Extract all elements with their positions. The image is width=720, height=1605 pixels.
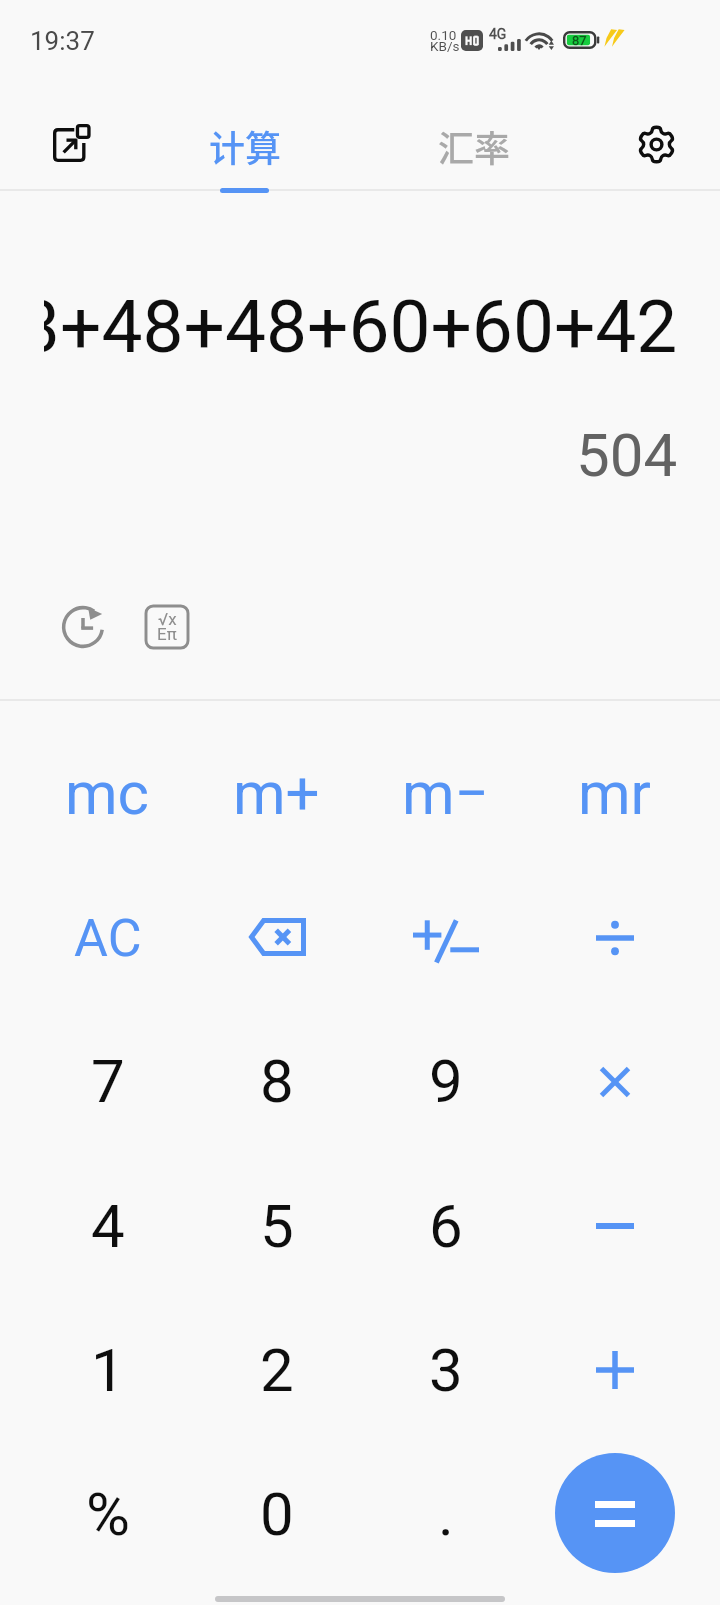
staticText: 3+48+48+60+60+42	[19, 284, 678, 370]
staticText: 0.10	[430, 27, 457, 43]
staticText: KB/s	[430, 38, 460, 54]
staticText: 19:37	[30, 26, 95, 56]
staticText: 4G	[489, 26, 507, 42]
button[interactable]: Multiply	[530, 1010, 699, 1154]
button[interactable]: Settings	[627, 115, 685, 173]
button[interactable]: 0	[192, 1442, 361, 1586]
button[interactable]: Equals	[555, 1453, 675, 1573]
button[interactable]: .	[361, 1442, 530, 1586]
staticText: m+	[233, 758, 320, 828]
staticText: 8	[260, 1046, 294, 1116]
staticText: 计算	[209, 120, 282, 172]
button[interactable]: 8	[192, 1009, 361, 1153]
staticText: AC	[74, 908, 142, 969]
staticText: 3	[429, 1335, 463, 1405]
staticText: mc	[65, 758, 150, 828]
staticText: 9	[429, 1046, 463, 1116]
staticText: 2	[260, 1335, 294, 1405]
staticText: %	[86, 1479, 130, 1549]
staticText: 0	[260, 1479, 294, 1549]
staticText: mr	[578, 758, 651, 828]
button[interactable]: 9	[361, 1009, 530, 1153]
staticText: √x	[158, 609, 177, 629]
staticText: 5	[260, 1191, 294, 1261]
button[interactable]: 计算	[165, 92, 323, 188]
staticText: m−	[402, 758, 489, 828]
button[interactable]: 3	[361, 1298, 530, 1442]
button[interactable]: Minus	[530, 1154, 699, 1298]
button[interactable]: 1	[23, 1298, 192, 1442]
button[interactable]: 6	[361, 1154, 530, 1298]
button[interactable]: %	[23, 1442, 192, 1586]
staticText: 4	[91, 1191, 125, 1261]
button[interactable]: 2	[192, 1298, 361, 1442]
button[interactable]: Scientific mode	[142, 602, 192, 652]
staticText: Eπ	[157, 624, 177, 644]
button[interactable]: 4	[23, 1154, 192, 1298]
button[interactable]: AC	[23, 866, 192, 1010]
staticText: 87	[572, 33, 587, 48]
staticText: 汇率	[438, 120, 511, 172]
staticText: .	[438, 1479, 454, 1549]
button[interactable]: Floating window	[44, 115, 100, 171]
button[interactable]: m+	[192, 721, 361, 865]
button[interactable]: Plus	[530, 1298, 699, 1442]
staticText: 6	[429, 1191, 463, 1261]
button[interactable]: m−	[361, 721, 530, 865]
staticText: 504	[576, 420, 678, 490]
button[interactable]: Divide	[530, 866, 699, 1010]
button[interactable]: History	[58, 602, 108, 652]
button[interactable]: mr	[530, 721, 699, 865]
button[interactable]: 5	[192, 1154, 361, 1298]
button[interactable]: mc	[23, 721, 192, 865]
button[interactable]: Backspace	[192, 865, 361, 1009]
button[interactable]: Plus minus	[361, 869, 530, 1013]
button[interactable]: 汇率	[396, 92, 554, 188]
button[interactable]: 7	[23, 1009, 192, 1153]
staticText: 7	[91, 1046, 125, 1116]
staticText: 1	[91, 1335, 125, 1405]
